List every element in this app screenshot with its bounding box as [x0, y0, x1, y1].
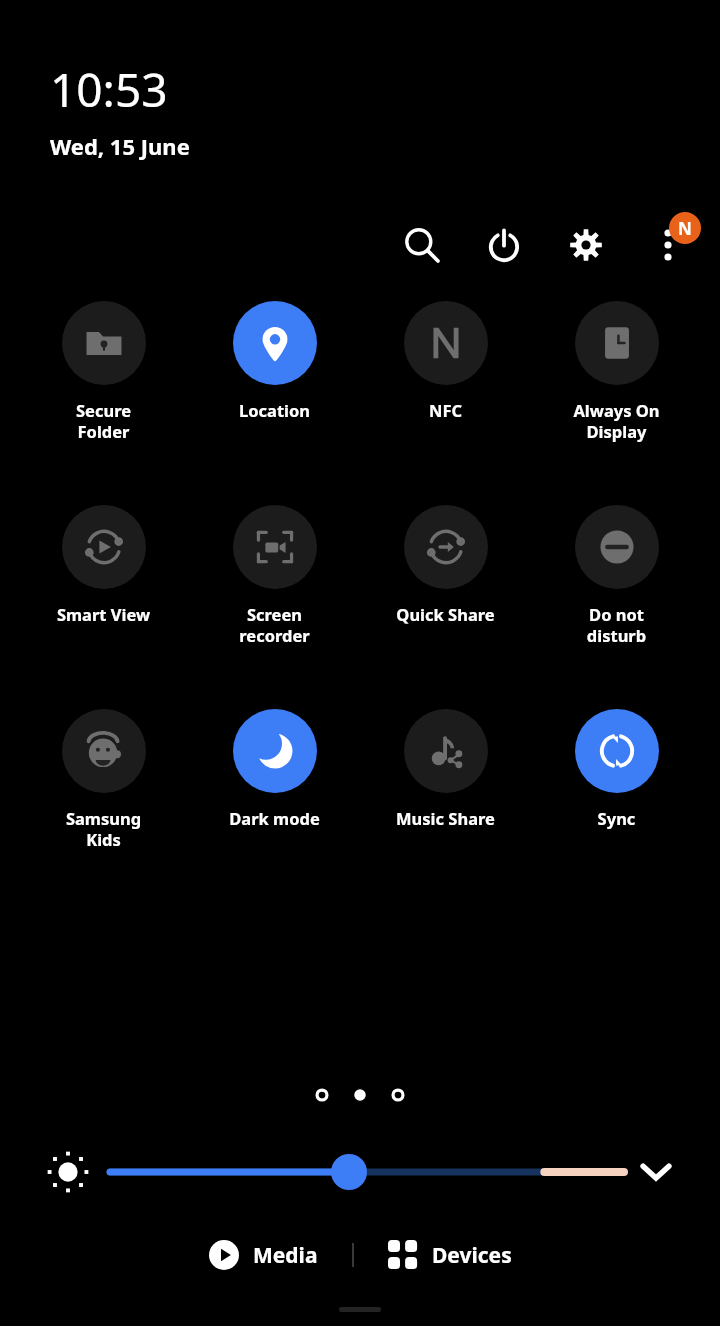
button[interactable]: Music Share	[360, 709, 531, 829]
staticText: N	[678, 217, 692, 240]
staticText: Quick Share	[360, 603, 531, 625]
staticText: Location	[189, 399, 360, 421]
button[interactable]: Sync	[531, 709, 702, 829]
staticText: Media	[253, 1241, 318, 1270]
button[interactable]: Power	[470, 211, 538, 279]
button[interactable]: Page	[352, 1087, 368, 1103]
button[interactable]: Secure Folder	[18, 301, 189, 443]
staticText: Screen recorder	[189, 603, 360, 647]
button[interactable]: Devices	[378, 1234, 522, 1276]
staticText: NFC	[360, 399, 531, 421]
button[interactable]: Location	[189, 301, 360, 421]
staticText: Smart View	[18, 603, 189, 625]
button[interactable]: Dark mode	[189, 709, 360, 829]
button[interactable]: Page	[390, 1087, 406, 1103]
staticText: Devices	[432, 1241, 512, 1270]
button[interactable]: Page	[314, 1087, 330, 1103]
staticText: Music Share	[360, 807, 531, 829]
button[interactable]: Smart View	[18, 505, 189, 625]
staticText: 10:53	[50, 58, 168, 121]
button[interactable]	[98, 1149, 628, 1195]
button[interactable]: Media	[199, 1234, 328, 1276]
button[interactable]: Brightness	[38, 1142, 98, 1202]
button[interactable]: Always On Display	[531, 301, 702, 443]
button[interactable]: Do not disturb	[531, 505, 702, 647]
button[interactable]: NFC	[360, 301, 531, 421]
button[interactable]: Quick Share	[360, 505, 531, 625]
button[interactable]: Search	[388, 211, 456, 279]
button[interactable]: Samsung Kids	[18, 709, 189, 851]
staticText: Do not disturb	[531, 603, 702, 647]
staticText: Wed, 15 June	[50, 131, 190, 161]
staticText: Samsung Kids	[18, 807, 189, 851]
button[interactable]: Expand	[628, 1144, 684, 1200]
button[interactable]: Screen recorder	[189, 505, 360, 647]
staticText: Secure Folder	[18, 399, 189, 443]
staticText: Dark mode	[189, 807, 360, 829]
button[interactable]: More options	[634, 211, 702, 279]
staticText: Always On Display	[531, 399, 702, 443]
button[interactable]: Settings	[552, 211, 620, 279]
staticText: Sync	[531, 807, 702, 829]
